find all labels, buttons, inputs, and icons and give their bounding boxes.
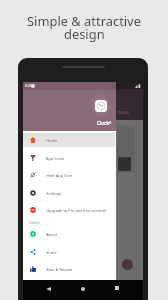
- staticText: 5:29: [25, 83, 33, 88]
- staticText: Clock+: [97, 120, 112, 126]
- button[interactable]: Home: [23, 132, 116, 148]
- staticText: Rate & Review: [46, 267, 73, 272]
- button[interactable]: App Color: [23, 150, 116, 166]
- button[interactable]: Upgrade to Pro (ad-free version): [23, 202, 116, 218]
- button[interactable]: Settings: [23, 185, 116, 201]
- button[interactable]: About: [23, 226, 116, 242]
- staticText: Settings: [46, 191, 62, 196]
- staticText: Simple & attractive: [27, 12, 141, 30]
- staticText: Home: [46, 138, 58, 143]
- button[interactable]: Rate & Review: [23, 261, 116, 277]
- staticText: Others: [29, 220, 40, 225]
- staticText: PAGES: [118, 110, 130, 115]
- button[interactable]: Share: [23, 244, 116, 260]
- staticText: Hide App Icon: [46, 173, 73, 178]
- button[interactable]: Back: [46, 287, 51, 291]
- button[interactable]: Hide App Icon: [23, 167, 116, 183]
- staticText: Share: [46, 250, 57, 255]
- staticText: design: [64, 25, 105, 43]
- staticText: App Color: [46, 156, 65, 161]
- staticText: About: [46, 232, 58, 237]
- button[interactable]: Add alarm: [122, 259, 133, 270]
- button[interactable]: Home: [81, 287, 85, 291]
- staticText: Upgrade to Pro (ad-free version): [46, 208, 107, 213]
